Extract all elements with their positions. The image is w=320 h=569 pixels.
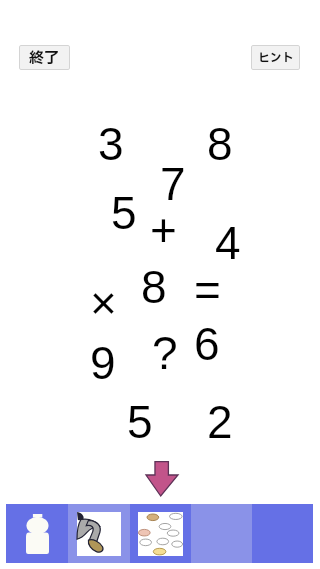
button[interactable]: ヒント	[251, 45, 300, 70]
button[interactable]: Trunk	[68, 504, 130, 563]
staticText: 8	[141, 261, 167, 312]
staticText: 3	[98, 118, 124, 169]
staticText: 7	[160, 158, 186, 209]
staticText: 6	[194, 318, 220, 369]
staticText: =	[194, 264, 221, 315]
button[interactable]: 終了	[19, 45, 70, 70]
staticText: 2	[207, 396, 233, 447]
button[interactable]: Cookies	[130, 504, 191, 563]
staticText: 終了	[29, 47, 60, 69]
staticText: ?	[152, 327, 178, 378]
staticText: 8	[207, 118, 233, 169]
other: Drop here	[146, 461, 178, 496]
staticText: 9	[90, 337, 116, 388]
staticText: 5	[127, 396, 153, 447]
staticText: ×	[90, 277, 117, 328]
staticText: ヒント	[258, 49, 294, 67]
staticText: 5	[111, 187, 137, 238]
staticText: +	[150, 204, 177, 255]
staticText: 4	[215, 217, 241, 268]
button[interactable]: Bottle	[6, 504, 68, 563]
